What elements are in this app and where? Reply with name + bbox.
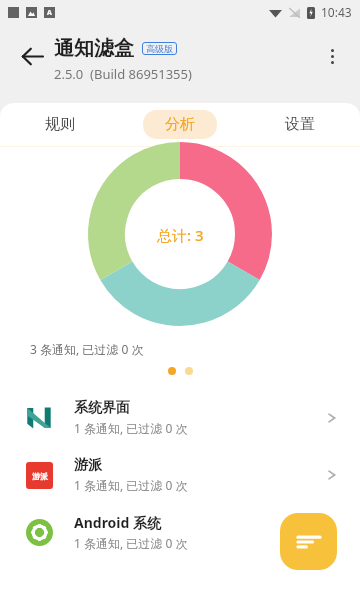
staticText: 1 条通知, 已过滤 0 次	[74, 420, 188, 436]
staticText: 分析	[165, 115, 195, 134]
staticText: 总计: 3	[157, 225, 204, 245]
button[interactable]	[185, 367, 193, 375]
button[interactable]: 规则	[0, 103, 120, 146]
button[interactable]: Android 系统	[0, 503, 360, 560]
button[interactable]: 游派	[0, 446, 360, 503]
staticText: 游派	[74, 456, 102, 474]
staticText: A	[47, 8, 52, 18]
button[interactable]: 设置	[240, 103, 360, 146]
button[interactable]	[168, 367, 176, 375]
button[interactable]: Back	[12, 36, 52, 76]
staticText: 1 条通知, 已过滤 0 次	[74, 477, 188, 493]
button[interactable]: 系统界面	[0, 389, 360, 446]
button[interactable]: More options	[312, 36, 352, 76]
staticText: 3 条通知, 已过滤 0 次	[30, 341, 144, 357]
staticText: 设置	[285, 115, 315, 134]
staticText: 规则	[45, 115, 75, 134]
staticText: 2.5.0 (Build 86951355)	[54, 65, 192, 83]
staticText: 10:43	[321, 4, 352, 20]
button[interactable]: 分析	[143, 110, 217, 139]
button[interactable]: Sort	[280, 513, 337, 570]
staticText: 游派	[32, 471, 48, 481]
staticText: 高级版	[146, 43, 173, 54]
staticText: Android 系统	[74, 513, 162, 532]
staticText: 1 条通知, 已过滤 0 次	[74, 535, 188, 551]
staticText: 系统界面	[74, 399, 130, 417]
staticText: 通知滤盒	[54, 36, 134, 61]
